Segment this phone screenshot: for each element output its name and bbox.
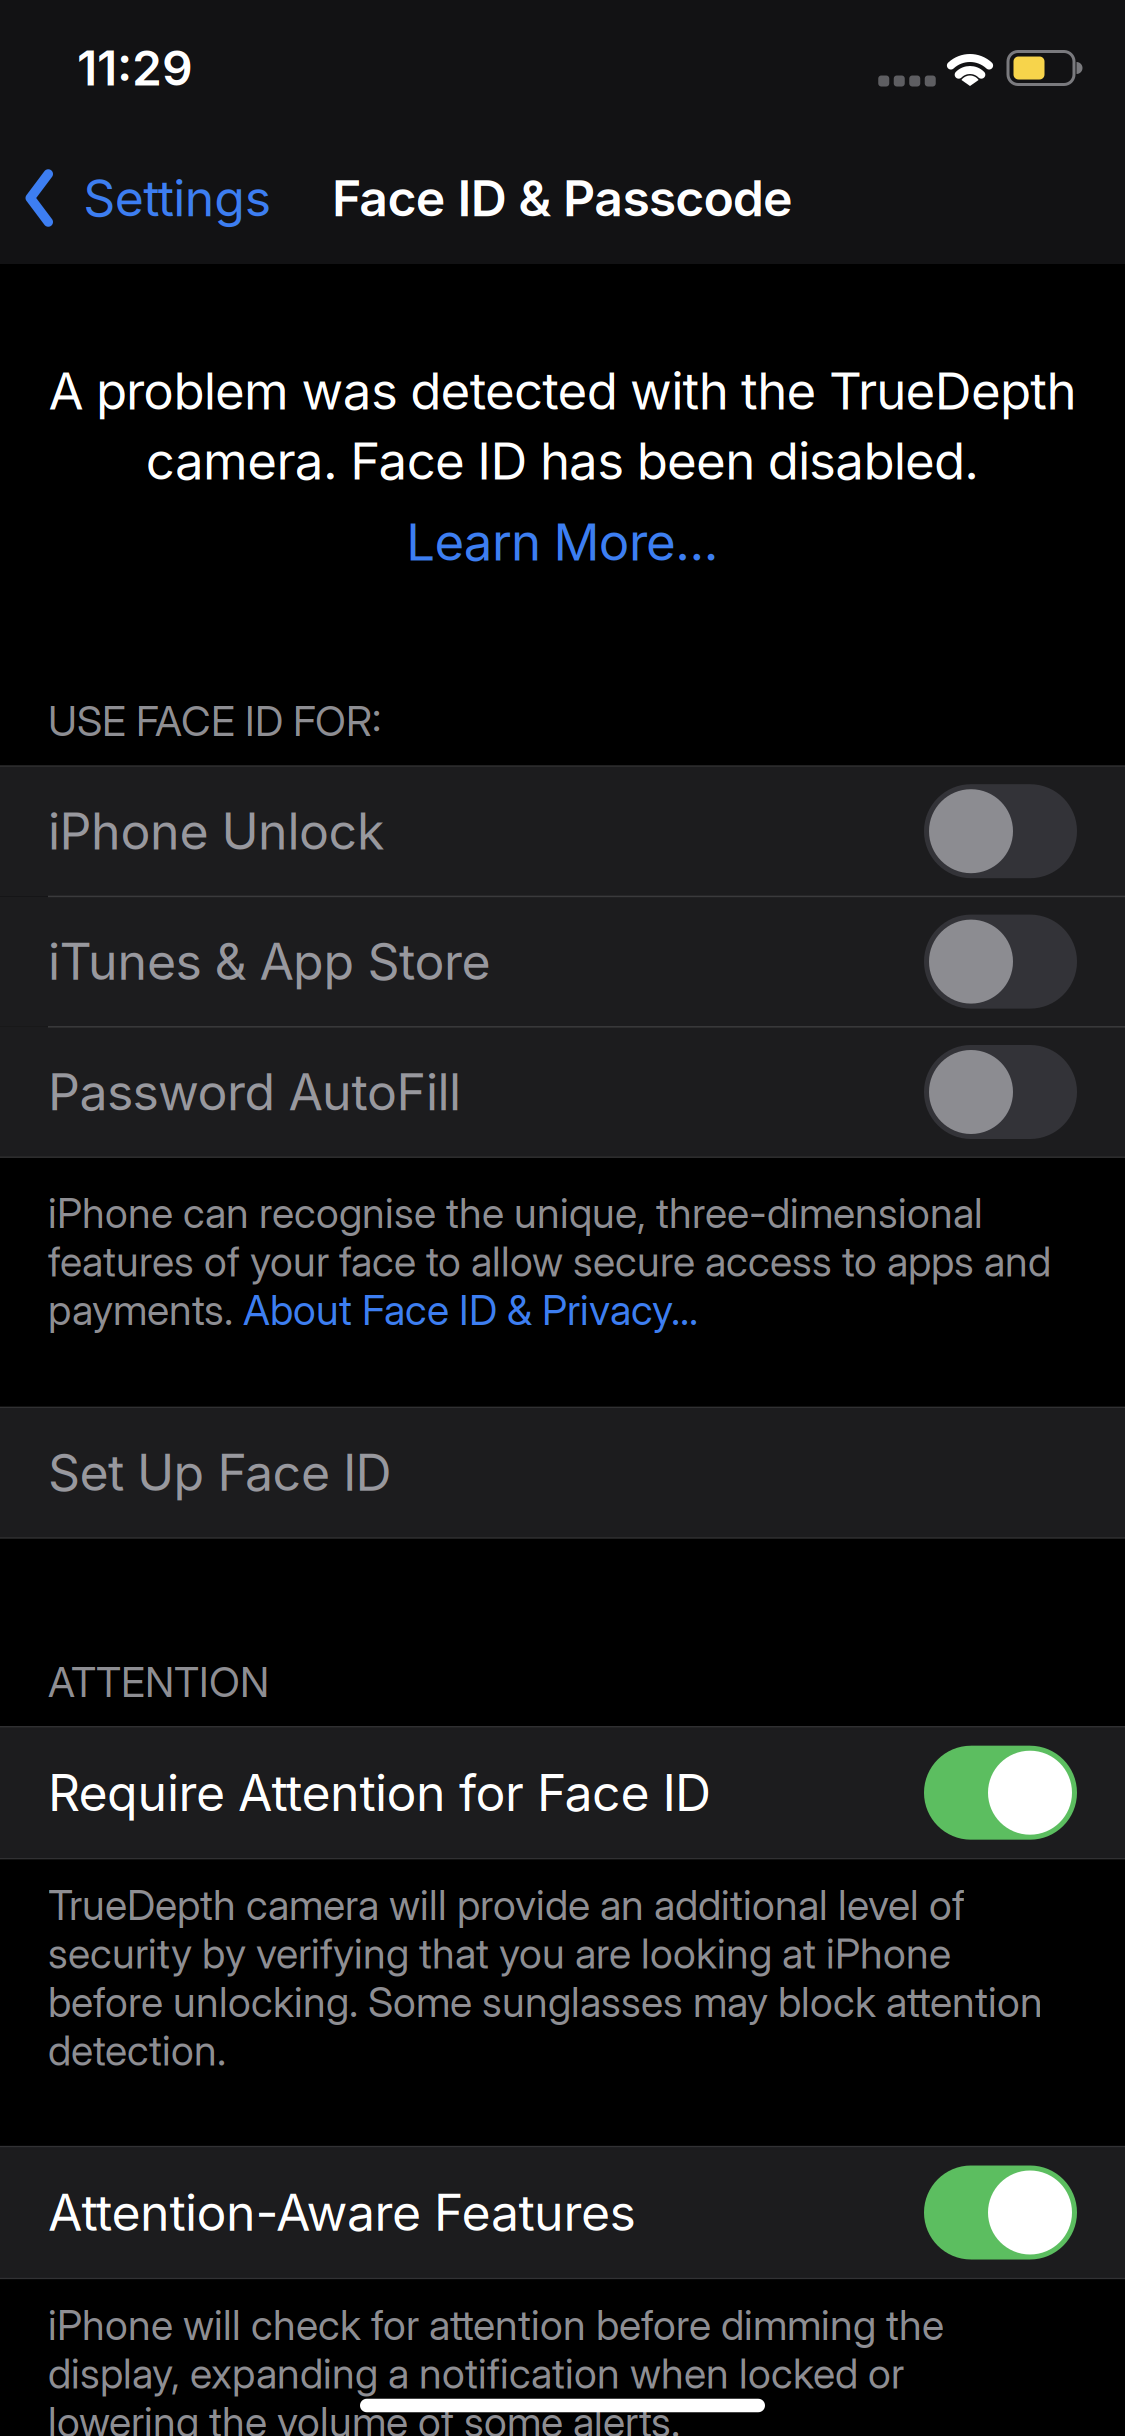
staticText: display, expanding a notification when l… [48, 2349, 904, 2398]
staticText: About Face ID & Privacy... [243, 1285, 698, 1335]
staticText: iTunes & App Store [48, 931, 490, 992]
staticText: iPhone can recognise the unique, three-d… [48, 1188, 983, 1238]
button[interactable]: Require Attention for Face ID [0, 1727, 1125, 1859]
staticText: ATTENTION [48, 1657, 269, 1707]
button[interactable]: Back to Settings [25, 163, 271, 233]
staticText: Settings [83, 168, 271, 228]
staticText: A problem was detected with the TrueDept… [48, 360, 1076, 422]
staticText: Password AutoFill [48, 1062, 461, 1122]
button[interactable]: About Face ID & Privacy... [243, 1285, 698, 1335]
button[interactable]: Set Up Face ID [0, 1407, 1125, 1538]
staticText: TrueDepth camera will provide an additio… [48, 1880, 965, 1930]
staticText: Attention-Aware Features [48, 2182, 635, 2243]
staticText: USE FACE ID FOR: [48, 696, 381, 746]
staticText: security by verifying that you are looki… [48, 1929, 951, 1978]
staticText: lowering the volume of some alerts. [48, 2397, 680, 2436]
staticText: 11:29 [77, 39, 193, 97]
staticText: Set Up Face ID [48, 1442, 391, 1503]
staticText: before unlocking. Some sunglasses may bl… [48, 1977, 1043, 2027]
staticText: Face ID & Passcode [332, 168, 793, 228]
button[interactable]: Password AutoFill [0, 1027, 1125, 1157]
button[interactable]: iTunes & App Store [0, 896, 1125, 1027]
staticText: iPhone will check for attention before d… [48, 2300, 944, 2350]
staticText: Learn More... [406, 511, 719, 573]
staticText: features of your face to allow secure ac… [48, 1237, 1051, 1286]
button[interactable]: Learn More... [406, 511, 719, 573]
staticText: iPhone Unlock [48, 801, 384, 861]
button[interactable]: Attention-Aware Features [0, 2146, 1125, 2278]
staticText: camera. Face ID has been disabled. [146, 430, 979, 492]
staticText: payments. [48, 1285, 243, 1335]
button[interactable]: iPhone Unlock [0, 766, 1125, 896]
staticText: Require Attention for Face ID [48, 1762, 711, 1823]
staticText: detection. [48, 2026, 226, 2075]
